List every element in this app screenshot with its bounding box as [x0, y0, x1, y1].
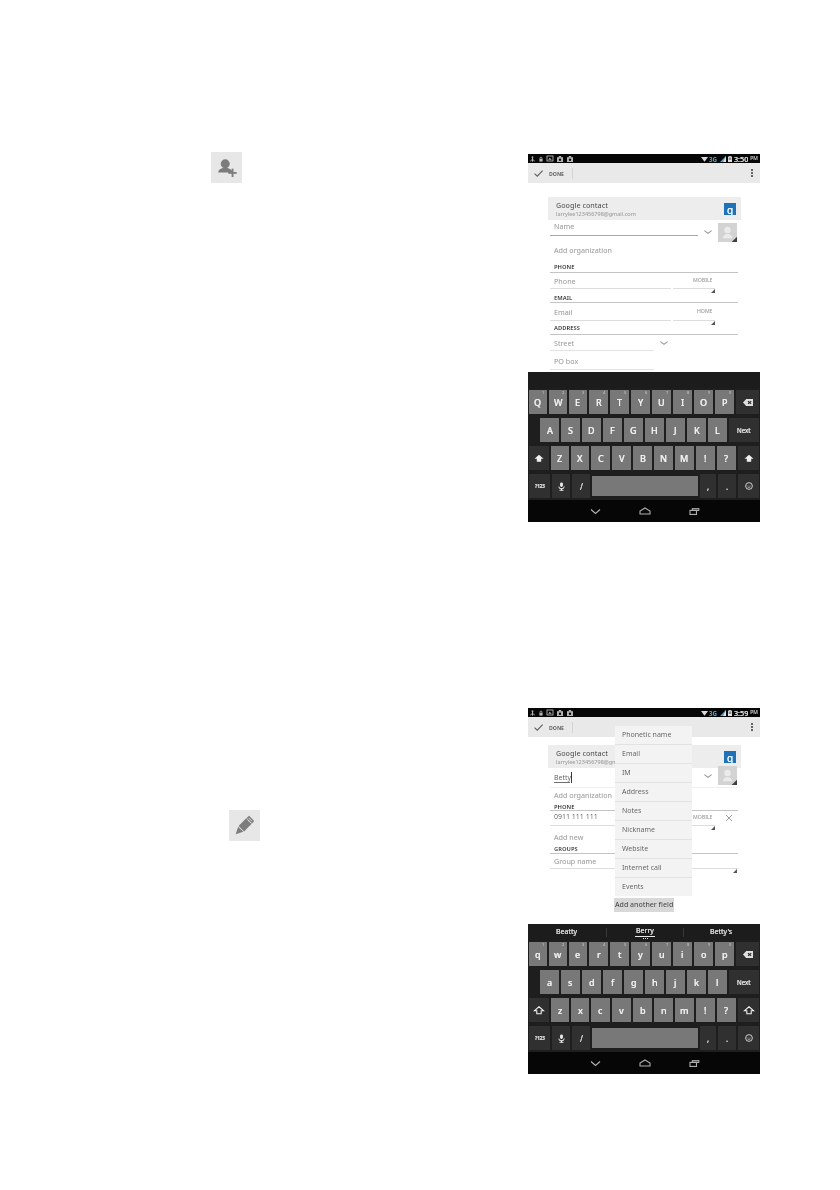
button[interactable]: 0911 111 111 — [550, 809, 671, 828]
button[interactable]: 0 — [715, 390, 734, 414]
button[interactable]: j — [666, 970, 685, 994]
button[interactable]: , — [700, 1026, 716, 1050]
button[interactable]: Contact photo — [718, 223, 737, 242]
button[interactable]: PO box — [550, 353, 654, 372]
button[interactable]: 1 — [529, 390, 547, 414]
button[interactable]: 7 — [652, 942, 671, 966]
button[interactable]: Emoji — [738, 474, 759, 498]
button[interactable]: Email — [550, 304, 671, 323]
button[interactable]: Contact photo — [718, 766, 737, 785]
button[interactable]: Beatty — [528, 924, 606, 940]
button[interactable]: 9 — [694, 390, 713, 414]
button[interactable]: Shift — [529, 446, 549, 470]
button[interactable]: a — [540, 970, 559, 994]
button[interactable]: Email — [615, 745, 692, 763]
button[interactable]: H — [645, 418, 664, 442]
button[interactable]: Name — [550, 218, 698, 238]
button[interactable]: Voice input — [552, 474, 570, 498]
button[interactable]: Google contact — [548, 197, 741, 220]
button[interactable]: 8 — [673, 390, 692, 414]
button[interactable]: , — [700, 474, 716, 498]
button[interactable]: B — [633, 446, 652, 470]
button[interactable]: s — [561, 970, 580, 994]
button[interactable]: Backspace — [736, 942, 759, 966]
button[interactable]: k — [687, 970, 706, 994]
button[interactable]: Voice input — [552, 1026, 570, 1050]
button[interactable]: Shift — [529, 998, 549, 1022]
button[interactable]: V — [612, 446, 631, 470]
button[interactable]: Notes — [615, 802, 692, 820]
button[interactable]: l — [708, 970, 727, 994]
button[interactable]: IM — [615, 764, 692, 782]
button[interactable]: Internet call — [615, 859, 692, 877]
button[interactable]: D — [582, 418, 601, 442]
button[interactable]: J — [666, 418, 685, 442]
button[interactable]: 2 — [549, 942, 567, 966]
button[interactable]: Back — [585, 500, 605, 522]
button[interactable]: Street — [550, 335, 654, 353]
button[interactable]: Remove phone number — [722, 811, 736, 825]
button[interactable]: 2 — [549, 390, 567, 414]
button[interactable]: 4 — [589, 390, 608, 414]
button[interactable]: Expand name — [700, 224, 716, 240]
button[interactable]: ! — [696, 998, 715, 1022]
button[interactable]: L — [708, 418, 727, 442]
button[interactable]: g — [624, 970, 643, 994]
button[interactable]: Add organization — [554, 242, 624, 257]
button[interactable]: / — [572, 1026, 590, 1050]
button[interactable]: Expand address — [656, 335, 672, 351]
button[interactable]: c — [591, 998, 610, 1022]
button[interactable]: m — [675, 998, 694, 1022]
button[interactable]: Shift — [738, 446, 759, 470]
button[interactable]: Add another field — [614, 898, 674, 912]
button[interactable]: 7 — [652, 390, 671, 414]
button[interactable]: x — [571, 998, 589, 1022]
button[interactable]: Emoji — [738, 1026, 759, 1050]
button[interactable]: C — [591, 446, 610, 470]
button[interactable]: K — [687, 418, 706, 442]
button[interactable]: . — [718, 1026, 736, 1050]
button[interactable]: Betty — [550, 770, 738, 790]
button[interactable]: 1 — [529, 942, 547, 966]
button[interactable]: Add new — [554, 829, 599, 844]
button[interactable]: ?123 — [529, 474, 550, 498]
button[interactable]: Group name — [550, 853, 738, 871]
button[interactable]: 5 — [610, 942, 629, 966]
button[interactable]: Backspace — [736, 390, 759, 414]
button[interactable]: Events — [615, 878, 692, 896]
button[interactable]: DONE — [534, 163, 565, 183]
button[interactable]: Recents — [684, 500, 704, 522]
button[interactable]: n — [654, 998, 673, 1022]
button[interactable]: Add contact — [211, 152, 242, 183]
button[interactable]: Home — [635, 500, 655, 522]
button[interactable]: Website — [615, 840, 692, 858]
button[interactable]: 5 — [610, 390, 629, 414]
button[interactable]: Back — [585, 1052, 605, 1074]
button[interactable]: S — [561, 418, 580, 442]
button[interactable]: f — [603, 970, 622, 994]
button[interactable]: Recents — [684, 1052, 704, 1074]
button[interactable]: Edit contact — [229, 810, 260, 841]
button[interactable]: G — [624, 418, 643, 442]
button[interactable]: z — [551, 998, 569, 1022]
button[interactable]: 4 — [589, 942, 608, 966]
button[interactable]: ?123 — [529, 1026, 550, 1050]
button[interactable]: v — [612, 998, 631, 1022]
button[interactable]: . — [718, 474, 736, 498]
button[interactable]: h — [645, 970, 664, 994]
button[interactable]: X — [571, 446, 589, 470]
button[interactable]: 9 — [694, 942, 713, 966]
button[interactable]: 0 — [715, 942, 734, 966]
button[interactable]: A — [540, 418, 559, 442]
button[interactable]: 6 — [631, 942, 650, 966]
button[interactable]: Nickname — [615, 821, 692, 839]
button[interactable]: Add organization — [554, 787, 624, 802]
button[interactable]: b — [633, 998, 652, 1022]
button[interactable]: F — [603, 418, 622, 442]
button[interactable]: Google contact — [548, 745, 741, 768]
button[interactable]: More options — [744, 717, 760, 737]
button[interactable]: 3 — [569, 390, 587, 414]
button[interactable]: Next — [729, 418, 759, 442]
